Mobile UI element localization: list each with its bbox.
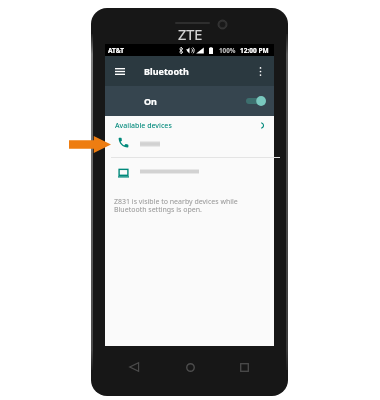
button[interactable] bbox=[105, 158, 274, 188]
button[interactable]: More options bbox=[250, 61, 270, 81]
staticText: Available devices bbox=[115, 121, 172, 131]
staticText: 12:00 PM bbox=[240, 46, 269, 55]
staticText: Z831 is visible to nearby devices while … bbox=[114, 197, 238, 214]
staticText: 100% bbox=[219, 46, 236, 55]
button[interactable]: Navigation menu bbox=[110, 61, 130, 81]
staticText: Bluetooth bbox=[144, 65, 189, 77]
staticText: AT&T bbox=[108, 46, 124, 55]
button[interactable] bbox=[105, 133, 274, 157]
button[interactable]: Recent apps bbox=[233, 356, 255, 378]
staticText: ZTE bbox=[178, 24, 203, 44]
staticText: On bbox=[144, 95, 157, 107]
button[interactable]: Back bbox=[123, 356, 145, 378]
button[interactable]: Home bbox=[179, 356, 201, 378]
button[interactable]: On bbox=[105, 86, 274, 116]
